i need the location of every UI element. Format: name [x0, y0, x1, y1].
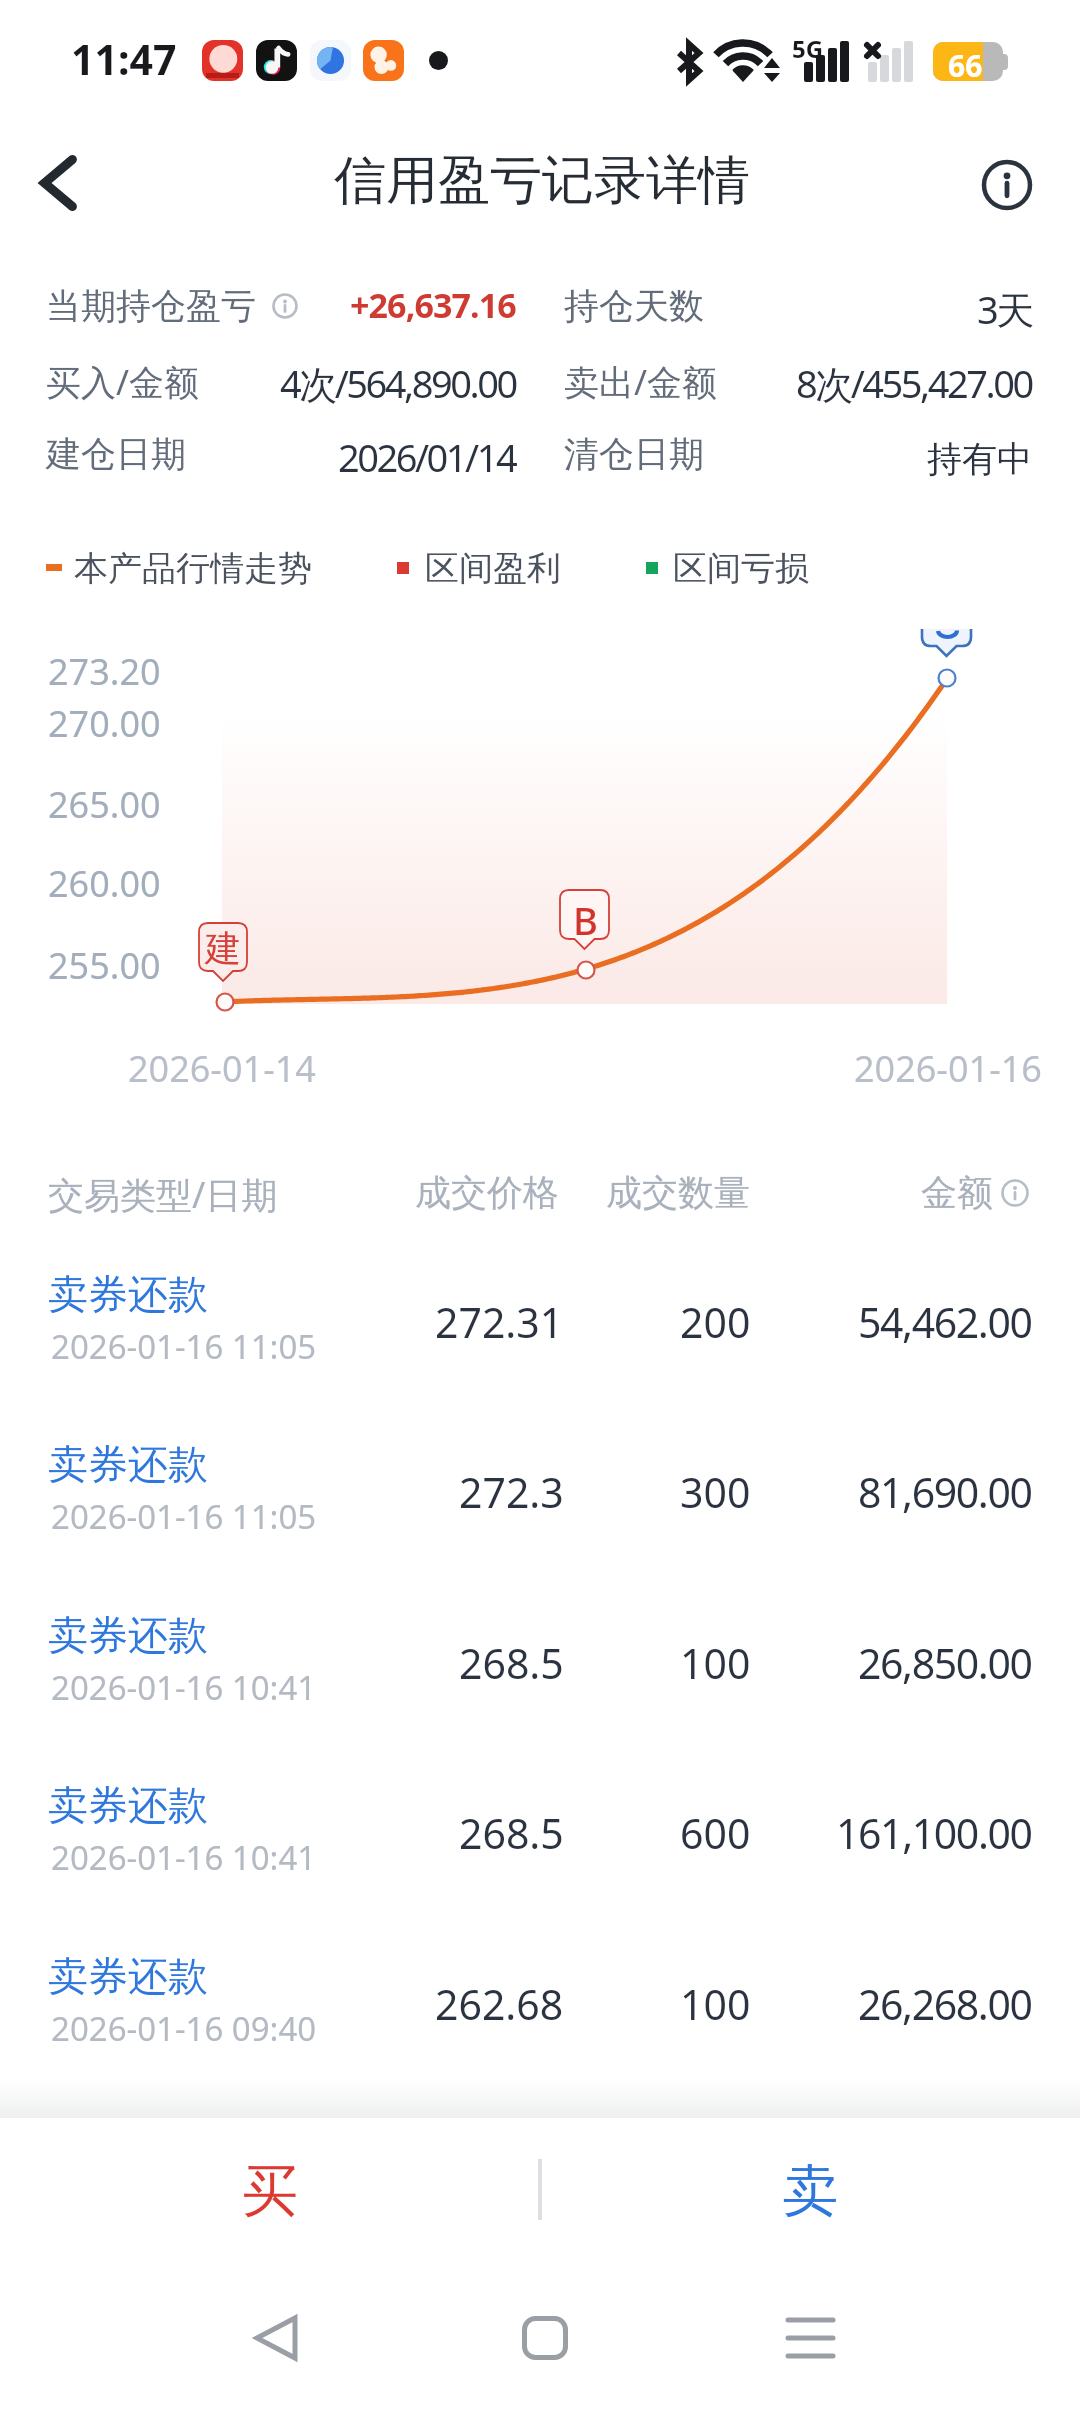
staticText: 卖券还款	[48, 1951, 208, 2001]
staticText: 卖券还款	[48, 1780, 208, 1830]
staticText: 买入/金额	[46, 358, 200, 406]
staticText: 81,690.00	[858, 1464, 1032, 1520]
staticText: 26,268.00	[858, 1976, 1032, 2032]
staticText: 区间亏损	[673, 547, 809, 590]
button[interactable]: 卖券还款	[0, 1258, 1080, 1428]
staticText: 273.20	[48, 647, 161, 696]
staticText: 270.00	[48, 699, 161, 748]
button[interactable]: More information	[1001, 1179, 1029, 1207]
button[interactable]: 卖券还款	[0, 1940, 1080, 2110]
staticText: 300	[680, 1464, 751, 1520]
staticText: 交易类型/日期	[48, 1170, 278, 1219]
staticText: 区间盈利	[425, 547, 561, 590]
staticText: B	[573, 894, 598, 946]
staticText: 买	[242, 2156, 298, 2227]
staticText: 11:47	[71, 31, 177, 87]
staticText: 600	[680, 1805, 751, 1861]
staticText: 2026-01-16 11:05	[51, 1324, 317, 1369]
staticText: 26,850.00	[858, 1635, 1032, 1691]
staticText: 265.00	[48, 780, 161, 829]
button[interactable]: Info	[962, 140, 1052, 230]
button[interactable]: Back	[10, 133, 110, 233]
staticText: 卖券还款	[48, 1439, 208, 1489]
staticText: +26,637.16	[350, 282, 516, 328]
staticText: 本产品行情走势	[74, 547, 312, 590]
button[interactable]: More information	[272, 293, 298, 319]
staticText: 2026-01-16 10:41	[51, 1835, 317, 1880]
staticText: 成交数量	[606, 1170, 750, 1215]
staticText: 2026-01-16 09:40	[51, 2006, 317, 2051]
staticText: 260.00	[48, 859, 161, 908]
staticText: 卖出/金额	[564, 358, 718, 406]
button[interactable]: 买	[0, 2118, 540, 2294]
staticText: 建仓日期	[46, 432, 186, 476]
button[interactable]: 卖券还款	[0, 1599, 1080, 1769]
button[interactable]: Home	[485, 2278, 605, 2398]
staticText: 卖券还款	[48, 1610, 208, 1660]
staticText: 持有中	[927, 437, 1032, 481]
staticText: 262.68	[435, 1976, 564, 2032]
button[interactable]: 卖券还款	[0, 1769, 1080, 1939]
staticText: 255.00	[48, 941, 161, 990]
staticText: 200	[680, 1294, 751, 1350]
staticText: 272.31	[435, 1294, 564, 1350]
staticText: 268.5	[459, 1635, 564, 1691]
staticText: 5G	[792, 32, 824, 65]
button[interactable]: Recents	[750, 2278, 870, 2398]
staticText: 161,100.00	[836, 1805, 1032, 1861]
staticText: 100	[680, 1635, 751, 1691]
staticText: 100	[680, 1976, 751, 2032]
staticText: 2026/01/14	[338, 431, 516, 483]
staticText: 66	[948, 45, 983, 86]
staticText: 信用盈亏记录详情	[334, 148, 750, 214]
staticText: 54,462.00	[858, 1294, 1032, 1350]
staticText: 清仓日期	[564, 432, 704, 476]
staticText: 当期持仓盈亏	[46, 284, 256, 328]
staticText: 268.5	[459, 1805, 564, 1861]
staticText: 卖	[782, 2156, 838, 2227]
staticText: 成交价格	[415, 1170, 559, 1215]
staticText: 2026-01-16	[854, 1044, 1042, 1093]
staticText: 建	[205, 926, 241, 971]
button[interactable]: 卖	[540, 2118, 1080, 2294]
staticText: 2026-01-16 10:41	[51, 1665, 317, 1710]
staticText: 2026-01-16 11:05	[51, 1494, 317, 1539]
staticText: 4次/564,890.00	[280, 357, 516, 409]
button[interactable]: 卖券还款	[0, 1428, 1080, 1598]
staticText: 金额	[921, 1170, 993, 1215]
staticText: 272.3	[459, 1464, 564, 1520]
button[interactable]: Back	[216, 2278, 336, 2398]
staticText: 持仓天数	[564, 284, 704, 328]
staticText: 3天	[977, 283, 1032, 335]
staticText: 卖券还款	[48, 1269, 208, 1319]
staticText: 2026-01-14	[128, 1044, 316, 1093]
staticText: 8次/455,427.00	[796, 357, 1032, 409]
